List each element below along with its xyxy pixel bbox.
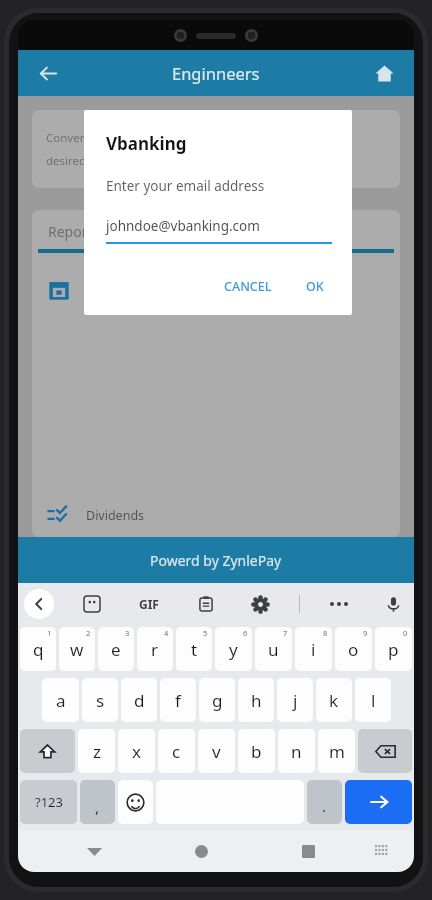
staticText: 7 [283, 628, 288, 638]
staticText: Conveniently generate reports and mail t… [46, 130, 329, 146]
button[interactable]: Back [24, 589, 54, 619]
button[interactable]: m [318, 729, 355, 773]
button[interactable]: a [42, 678, 79, 722]
button[interactable]: o [335, 627, 372, 671]
button[interactable]: . [307, 780, 342, 824]
staticText: 0 [403, 628, 408, 638]
staticText: v [212, 740, 221, 763]
staticText: 9 [363, 628, 368, 638]
staticText: s [96, 689, 105, 712]
button[interactable]: Home [364, 53, 404, 93]
button[interactable]: Switch input method [364, 834, 398, 868]
button[interactable]: ?123 [20, 780, 77, 824]
button[interactable]: Stickers [77, 589, 107, 619]
button[interactable]: q [20, 627, 56, 671]
staticText: 5 [203, 628, 208, 638]
staticText: 2 [86, 628, 91, 638]
staticText: c [172, 740, 181, 763]
staticText: p [388, 638, 399, 661]
button[interactable]: k [316, 678, 352, 722]
button[interactable]: Clipboard [191, 589, 221, 619]
staticText: Vbanking [106, 132, 187, 155]
button[interactable]: t [176, 627, 212, 671]
staticText: Enginneers [172, 62, 260, 84]
button[interactable]: w [59, 627, 95, 671]
staticText: 1 [47, 628, 52, 638]
button[interactable]: Recents [289, 832, 327, 870]
staticText: Reports [48, 222, 100, 241]
button[interactable]: e [98, 627, 134, 671]
staticText: m [329, 740, 345, 763]
staticText: 8 [323, 628, 328, 638]
staticText: Dividends [86, 507, 145, 524]
button[interactable]: h [238, 678, 274, 722]
staticText: o [348, 638, 359, 661]
staticText: y [229, 638, 238, 661]
button[interactable]: d [121, 678, 157, 722]
staticText: u [268, 638, 279, 661]
button[interactable]: , [80, 780, 115, 824]
staticText: GIF [139, 596, 159, 612]
staticText: k [329, 689, 339, 712]
staticText: Powerd by ZynlePay [150, 551, 282, 570]
button[interactable]: OK [298, 272, 332, 301]
button[interactable]: CANCEL [216, 272, 280, 301]
staticText: desired email [46, 153, 119, 169]
staticText: OK [306, 278, 324, 295]
staticText: t [191, 638, 198, 661]
button[interactable]: n [278, 729, 315, 773]
button[interactable]: Back [28, 53, 68, 93]
staticText: q [33, 638, 44, 661]
button[interactable]: g [199, 678, 235, 722]
button[interactable]: Voice input [378, 589, 408, 619]
staticText: 4 [164, 628, 169, 638]
staticText: j [293, 689, 298, 712]
staticText: e [111, 638, 121, 661]
button[interactable]: p [375, 627, 412, 671]
staticText: johndoe@vbanking.com [106, 217, 260, 235]
staticText: d [134, 689, 145, 712]
staticText: 3 [125, 628, 130, 638]
staticText: g [212, 689, 223, 712]
staticText: l [371, 689, 376, 712]
staticText: n [291, 740, 302, 763]
button[interactable]: z [78, 729, 115, 773]
button[interactable] [345, 780, 412, 824]
button[interactable]: u [255, 627, 292, 671]
button[interactable]: x [118, 729, 155, 773]
button[interactable]: More options [324, 589, 354, 619]
button[interactable] [358, 729, 412, 773]
button[interactable]: GIF [131, 589, 167, 619]
staticText: a [56, 689, 66, 712]
staticText: , [95, 797, 100, 817]
staticText: i [311, 638, 316, 661]
button[interactable]: Settings [245, 589, 275, 619]
staticText: ?123 [35, 793, 63, 811]
button[interactable]: s [82, 678, 118, 722]
button[interactable]: f [160, 678, 196, 722]
button[interactable]: r [137, 627, 173, 671]
button[interactable]: j [277, 678, 313, 722]
staticText: w [70, 638, 84, 661]
staticText: h [251, 689, 262, 712]
staticText: f [175, 689, 181, 712]
button[interactable] [118, 780, 153, 824]
staticText: r [151, 638, 159, 661]
staticText: 6 [243, 628, 248, 638]
staticText: Enter your email address [106, 177, 265, 195]
button[interactable] [20, 729, 75, 773]
button[interactable]: v [198, 729, 235, 773]
button[interactable]: l [355, 678, 391, 722]
button[interactable]: b [238, 729, 275, 773]
button[interactable]: Home [182, 832, 220, 870]
staticText: CANCEL [224, 278, 272, 295]
staticText: . [322, 796, 327, 816]
staticText: z [93, 740, 101, 763]
button[interactable]: i [295, 627, 332, 671]
button[interactable]: c [158, 729, 195, 773]
button[interactable]: y [215, 627, 252, 671]
staticText: x [132, 740, 141, 763]
staticText: b [251, 740, 262, 763]
button[interactable]: Hide keyboard [75, 832, 113, 870]
